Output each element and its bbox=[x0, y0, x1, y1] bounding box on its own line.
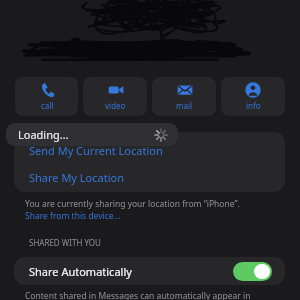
staticText: Share Automatically bbox=[29, 264, 132, 279]
staticText: mail bbox=[176, 100, 193, 111]
staticText: Send My Current Location bbox=[29, 143, 163, 158]
button[interactable]: video bbox=[83, 77, 147, 116]
staticText: Share My Location bbox=[29, 170, 124, 185]
staticText: Share from this device… bbox=[25, 210, 121, 222]
button[interactable]: mail bbox=[152, 77, 216, 116]
button[interactable]: call bbox=[15, 77, 78, 116]
staticText: Loading… bbox=[18, 127, 69, 142]
staticText: You are currently sharing your location … bbox=[25, 198, 240, 210]
staticText: SHARED WITH YOU bbox=[29, 237, 101, 248]
staticText: video bbox=[105, 100, 126, 111]
button[interactable]: Share Automatically bbox=[14, 257, 285, 285]
button[interactable]: Share from this device… bbox=[25, 210, 121, 222]
button[interactable]: Send My Current Location bbox=[14, 132, 285, 162]
button[interactable]: Share My Location bbox=[14, 162, 285, 192]
staticText: call bbox=[41, 100, 54, 111]
staticText: info bbox=[246, 100, 261, 111]
button[interactable]: info bbox=[221, 77, 285, 116]
staticText: Content shared in Messages can automatic… bbox=[25, 290, 251, 300]
